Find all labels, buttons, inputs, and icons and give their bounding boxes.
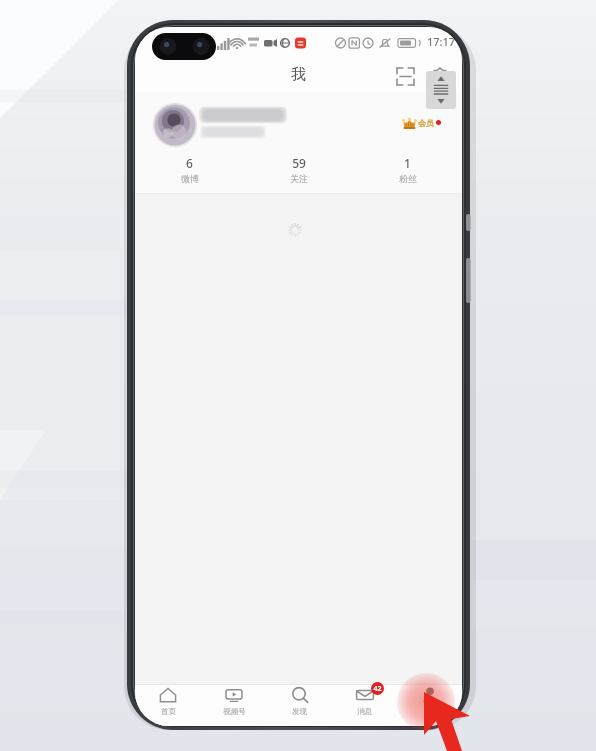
staticText: 会员 (418, 118, 434, 128)
button[interactable]: 首页 (135, 685, 201, 716)
button[interactable]: Settings (428, 64, 452, 88)
button[interactable]: 我 (397, 685, 462, 716)
button[interactable]: 会员 (135, 92, 462, 155)
button[interactable]: 会员 (402, 115, 441, 130)
staticText: 6 (186, 155, 193, 171)
staticText: 粉丝 (399, 173, 417, 184)
staticText: 消息 (357, 707, 372, 716)
staticText: 关注 (290, 173, 308, 184)
staticText: 1 (404, 155, 411, 171)
button[interactable]: 发现 (267, 685, 332, 716)
button[interactable]: Scan QR code (393, 64, 417, 88)
button[interactable]: 6 (135, 155, 244, 184)
button[interactable]: 我 (291, 65, 306, 84)
button[interactable]: 1 (353, 155, 462, 184)
staticText: 微博 (181, 173, 199, 184)
staticText: 视频号 (223, 707, 246, 716)
staticText: 59 (292, 155, 306, 171)
button[interactable]: 59 (244, 155, 353, 184)
staticText: 首页 (161, 707, 176, 716)
staticText: 17:17 (427, 34, 456, 49)
button[interactable]: Scroll control (426, 71, 456, 109)
button[interactable]: 视频号 (201, 685, 267, 716)
button[interactable]: 42 (332, 685, 397, 716)
staticText: 42 (373, 684, 382, 694)
staticText: 发现 (292, 707, 307, 716)
